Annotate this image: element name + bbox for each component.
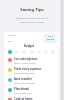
button[interactable]: Category [37, 50, 41, 54]
staticText: Cook at home [14, 97, 33, 100]
button[interactable]: Cook at home [8, 97, 57, 100]
staticText: Plan ahead [14, 87, 29, 91]
button[interactable]: Cut subscriptions [8, 57, 57, 67]
staticText: Budget [8, 44, 50, 48]
staticText: Total [8, 40, 13, 43]
button[interactable]: Category [30, 50, 34, 54]
staticText: set monthly goals [14, 92, 33, 95]
button[interactable]: Track every expense [8, 67, 57, 77]
button[interactable]: Category [44, 50, 48, 54]
staticText: review weekly totals [14, 72, 35, 75]
staticText: saves 12 each month [14, 62, 36, 65]
staticText: details [47, 38, 54, 41]
staticText: Track every expense [14, 67, 42, 71]
button[interactable]: More options [44, 34, 57, 43]
button[interactable]: Auto transfer [8, 77, 57, 87]
staticText: Monthly [8, 34, 16, 37]
staticText: Cut subscriptions [14, 57, 38, 61]
button[interactable]: All [8, 50, 12, 54]
staticText: move 10% to savings [14, 82, 36, 85]
staticText: Auto transfer [14, 77, 33, 81]
button[interactable]: Category [22, 50, 26, 54]
staticText: Saving Tips [0, 7, 64, 13]
button[interactable]: Category [15, 50, 19, 54]
staticText: Reduce tips that save 30% in your monthl… [7, 16, 57, 24]
button[interactable]: Category [51, 50, 55, 54]
button[interactable]: Plan ahead [8, 87, 57, 97]
